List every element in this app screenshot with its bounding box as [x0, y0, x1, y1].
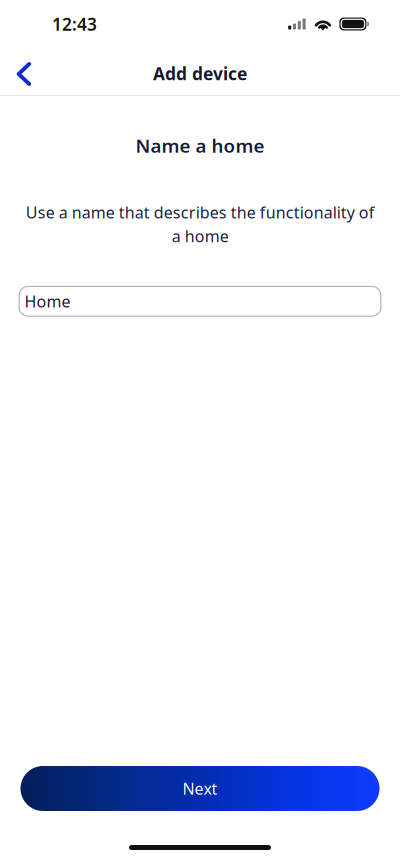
staticText: Next: [182, 778, 217, 799]
staticText: 12:43: [52, 12, 97, 35]
button[interactable]: Back: [0, 48, 46, 96]
button[interactable]: Next: [20, 766, 379, 811]
staticText: Name a home: [135, 133, 264, 158]
staticText: Add device: [153, 62, 247, 85]
button[interactable]: Home: [18, 286, 381, 317]
staticText: Use a name that describes the functional…: [25, 202, 374, 247]
staticText: Home: [24, 291, 70, 312]
